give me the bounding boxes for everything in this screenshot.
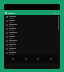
button[interactable]: [4, 47, 60, 51]
button[interactable]: [4, 10, 60, 15]
button[interactable]: Nav item: [35, 56, 41, 62]
button[interactable]: Nav item: [10, 56, 16, 62]
button[interactable]: Nav item: [23, 56, 29, 62]
button[interactable]: Nav item: [48, 56, 54, 62]
button[interactable]: [4, 19, 60, 23]
button[interactable]: [4, 43, 60, 47]
button[interactable]: [4, 31, 60, 35]
button[interactable]: [4, 15, 60, 19]
button[interactable]: [4, 51, 60, 55]
button[interactable]: [4, 23, 60, 27]
button[interactable]: [4, 39, 60, 43]
button[interactable]: [4, 27, 60, 31]
button[interactable]: [4, 35, 60, 39]
